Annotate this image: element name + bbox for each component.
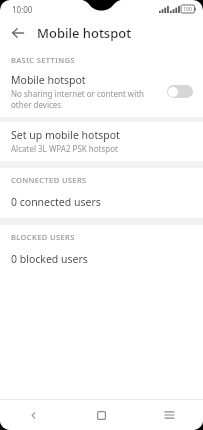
button[interactable]: Set up mobile hotspot — [0, 122, 203, 161]
button[interactable]: Back — [5, 20, 31, 46]
button[interactable]: Recents — [135, 400, 203, 430]
staticText: BLOCKED USERS — [11, 232, 203, 242]
button[interactable]: Back — [0, 400, 67, 430]
staticText: Set up mobile hotspot — [11, 128, 120, 142]
staticText: Alcatel 3L WPA2 PSK hotspot — [11, 143, 118, 154]
button[interactable]: 0 blocked users — [0, 248, 203, 275]
button[interactable]: Mobile hotspot — [0, 70, 203, 117]
staticText: BASIC SETTINGS — [11, 55, 203, 65]
staticText: CONNECTED USERS — [11, 175, 203, 185]
staticText: 100 — [183, 6, 192, 13]
button[interactable]: Mobile hotspot toggle — [167, 85, 193, 98]
staticText: 10:00 — [12, 4, 33, 15]
button[interactable]: 0 connected users — [0, 191, 203, 218]
staticText: 0 connected users — [11, 195, 101, 209]
staticText: Mobile hotspot — [11, 73, 86, 87]
staticText: No sharing internet or content with othe… — [11, 88, 161, 110]
button[interactable]: Home — [67, 400, 135, 430]
staticText: 0 blocked users — [11, 252, 88, 266]
staticText: Mobile hotspot — [37, 24, 132, 42]
